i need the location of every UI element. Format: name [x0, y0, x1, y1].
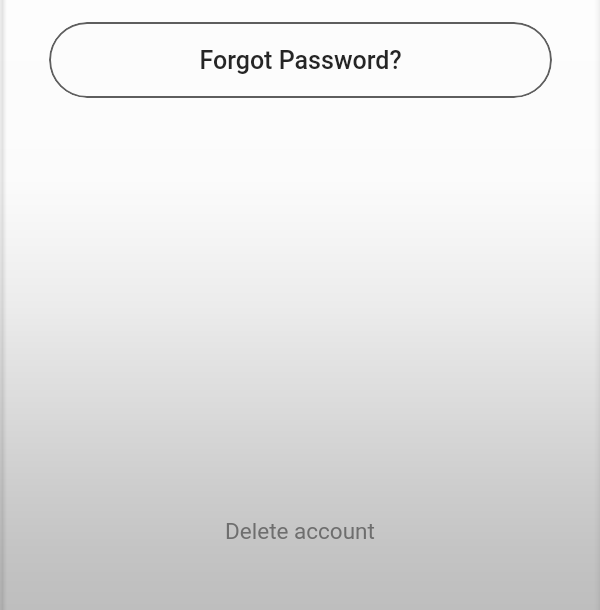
button[interactable]: Forgot Password? — [49, 22, 552, 98]
staticText: Delete account — [225, 518, 375, 544]
staticText: Forgot Password? — [199, 46, 402, 75]
button[interactable]: Delete account — [207, 509, 393, 553]
